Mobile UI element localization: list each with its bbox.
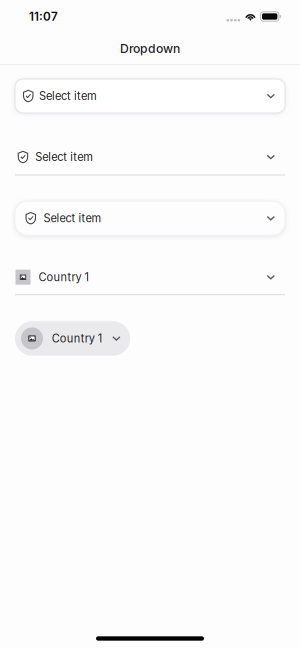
button[interactable]: Select item	[15, 201, 285, 235]
button[interactable]: Country 1	[15, 265, 285, 295]
staticText: Country 1	[52, 332, 103, 345]
staticText: 11:07	[29, 9, 58, 24]
staticText: Country 1	[38, 270, 89, 284]
button[interactable]: Select item	[15, 144, 285, 175]
staticText: Select item	[39, 89, 97, 103]
button[interactable]: Select item	[15, 79, 285, 113]
staticText: Dropdown	[120, 41, 180, 56]
button[interactable]: Country 1	[15, 321, 130, 356]
staticText: Select item	[43, 211, 101, 225]
staticText: Select item	[35, 150, 93, 164]
